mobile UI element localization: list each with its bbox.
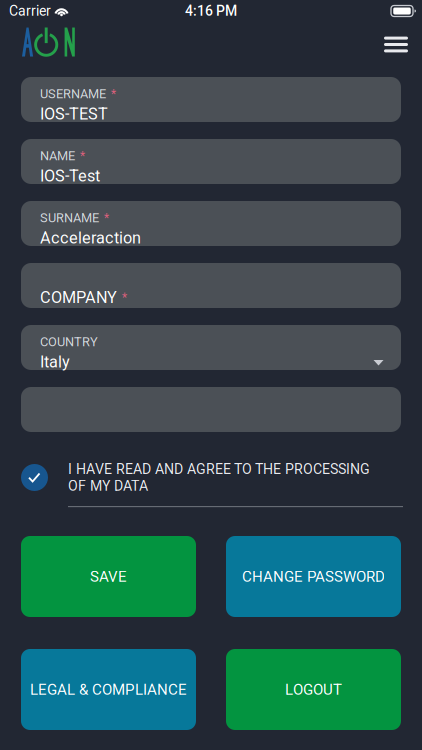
staticText: NAME (40, 148, 75, 163)
staticText: SURNAME (40, 210, 99, 225)
staticText: * (104, 211, 109, 225)
button[interactable]: CHANGE PASSWORD (226, 536, 401, 617)
button[interactable]: Menu (381, 28, 411, 56)
staticText: COUNTRY (40, 334, 98, 349)
button[interactable]: SAVE (21, 536, 196, 617)
staticText: IOS-TEST (40, 104, 108, 124)
staticText: IOS-Test (40, 166, 100, 186)
staticText: * (122, 290, 127, 305)
staticText: Carrier (9, 3, 51, 19)
staticText: Italy (40, 352, 70, 372)
button[interactable]: I have read and agree to the processing … (21, 464, 48, 491)
staticText: I HAVE READ AND AGREE TO THE PROCESSING … (68, 461, 370, 494)
staticText: SAVE (90, 568, 127, 585)
button[interactable]: LOGOUT (226, 649, 401, 730)
staticText: LOGOUT (285, 681, 342, 698)
staticText: * (111, 87, 116, 101)
button[interactable]: LEGAL & COMPLIANCE (21, 649, 196, 730)
staticText: COMPANY (40, 288, 117, 307)
staticText: Acceleraction (40, 228, 141, 248)
staticText: LEGAL & COMPLIANCE (30, 681, 187, 698)
staticText: * (80, 149, 85, 163)
staticText: CHANGE PASSWORD (242, 568, 385, 585)
staticText: USERNAME (40, 86, 106, 101)
staticText: 4:16 PM (185, 3, 237, 19)
